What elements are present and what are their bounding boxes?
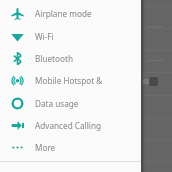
button[interactable]: Bluetooth <box>0 47 141 69</box>
staticText: Wi-Fi <box>35 31 54 42</box>
button[interactable]: Airplane mode <box>0 2 141 24</box>
staticText: Advanced Calling <box>35 120 101 131</box>
button[interactable]: Mobile Hotspot & Tethering <box>0 69 141 91</box>
staticText: Mobile Hotspot & Tethering <box>35 75 141 86</box>
staticText: Data usage <box>35 98 79 109</box>
staticText: Bluetooth <box>35 53 73 64</box>
button[interactable]: More <box>0 136 141 158</box>
button[interactable]: Wi-Fi <box>0 25 141 47</box>
staticText: Airplane mode <box>35 8 92 19</box>
staticText: More <box>35 142 56 153</box>
button[interactable]: Data usage <box>0 92 141 114</box>
button[interactable]: Toggle Mobile Hotspot <box>142 77 158 86</box>
button[interactable]: Advanced Calling <box>0 114 141 136</box>
